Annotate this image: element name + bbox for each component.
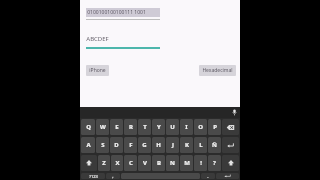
button[interactable]: L bbox=[194, 137, 207, 153]
button[interactable]: K bbox=[180, 137, 193, 153]
button[interactable]: S bbox=[96, 137, 109, 153]
staticText: 0100100100100111 1001 bbox=[87, 9, 146, 16]
button[interactable]: Shift bbox=[222, 155, 239, 171]
staticText: L bbox=[199, 141, 203, 149]
button[interactable]: G bbox=[138, 137, 151, 153]
staticText: P bbox=[213, 123, 217, 131]
staticText: ! bbox=[200, 159, 202, 167]
staticText: D bbox=[114, 141, 119, 149]
button[interactable]: J bbox=[166, 137, 179, 153]
staticText: M bbox=[184, 159, 190, 167]
button[interactable]: B bbox=[152, 155, 165, 171]
button[interactable]: ! bbox=[194, 155, 207, 171]
button[interactable]: Period bbox=[201, 173, 215, 179]
button[interactable]: Voice input bbox=[229, 107, 240, 118]
button[interactable]: Ñ bbox=[208, 137, 221, 153]
button[interactable]: Y bbox=[152, 119, 165, 135]
button[interactable]: H bbox=[152, 137, 165, 153]
button[interactable]: W bbox=[96, 119, 109, 135]
staticText: ABCDEF bbox=[86, 35, 109, 43]
button[interactable]: T bbox=[138, 119, 151, 135]
staticText: Z bbox=[102, 159, 106, 167]
staticText: iPhone bbox=[89, 67, 106, 74]
staticText: V bbox=[143, 159, 147, 167]
button[interactable]: Shift bbox=[81, 155, 97, 171]
staticText: Y bbox=[157, 123, 161, 131]
staticText: ?123 bbox=[89, 174, 98, 179]
staticText: N bbox=[170, 159, 175, 167]
staticText: Q bbox=[86, 123, 91, 131]
button[interactable]: Comma bbox=[106, 173, 120, 179]
staticText: Hexadecimal bbox=[202, 67, 233, 74]
staticText: E bbox=[115, 123, 119, 131]
button[interactable]: 0100100100100111 1001 bbox=[86, 8, 234, 20]
button[interactable]: R bbox=[124, 119, 137, 135]
staticText: A bbox=[86, 141, 91, 149]
button[interactable]: A bbox=[81, 137, 95, 153]
staticText: I bbox=[185, 123, 188, 131]
button[interactable]: M bbox=[180, 155, 193, 171]
staticText: U bbox=[170, 123, 175, 131]
staticText: Ñ bbox=[212, 141, 217, 149]
staticText: G bbox=[142, 141, 147, 149]
button[interactable]: Enter bbox=[222, 137, 239, 153]
staticText: T bbox=[143, 123, 147, 131]
button[interactable]: U bbox=[166, 119, 179, 135]
button[interactable]: O bbox=[194, 119, 207, 135]
button[interactable]: P bbox=[208, 119, 221, 135]
staticText: W bbox=[100, 123, 106, 131]
button[interactable]: I bbox=[180, 119, 193, 135]
button[interactable]: Symbols bbox=[81, 173, 105, 179]
button[interactable]: C bbox=[124, 155, 137, 171]
staticText: H bbox=[156, 141, 161, 149]
button[interactable]: Go bbox=[216, 173, 239, 179]
staticText: S bbox=[101, 141, 105, 149]
button[interactable]: Q bbox=[81, 119, 95, 135]
button[interactable]: X bbox=[111, 155, 123, 171]
staticText: K bbox=[185, 141, 189, 149]
button[interactable]: V bbox=[138, 155, 151, 171]
button[interactable]: N bbox=[166, 155, 179, 171]
staticText: F bbox=[129, 141, 133, 149]
button[interactable]: ? bbox=[208, 155, 221, 171]
button[interactable]: F bbox=[124, 137, 137, 153]
staticText: J bbox=[172, 141, 174, 149]
staticText: X bbox=[115, 159, 120, 167]
button[interactable]: iPhone bbox=[86, 65, 109, 76]
button[interactable]: ABCDEF bbox=[86, 35, 234, 49]
button[interactable]: Hexadecimal bbox=[199, 65, 236, 76]
staticText: R bbox=[129, 123, 133, 131]
button[interactable]: Z bbox=[98, 155, 110, 171]
staticText: , bbox=[112, 173, 114, 179]
button[interactable]: Backspace bbox=[222, 119, 239, 135]
button[interactable]: E bbox=[110, 119, 123, 135]
staticText: . bbox=[207, 173, 209, 179]
staticText: B bbox=[157, 159, 161, 167]
button[interactable]: D bbox=[110, 137, 123, 153]
staticText: O bbox=[198, 123, 203, 131]
staticText: ? bbox=[213, 159, 216, 167]
staticText: C bbox=[129, 159, 133, 167]
